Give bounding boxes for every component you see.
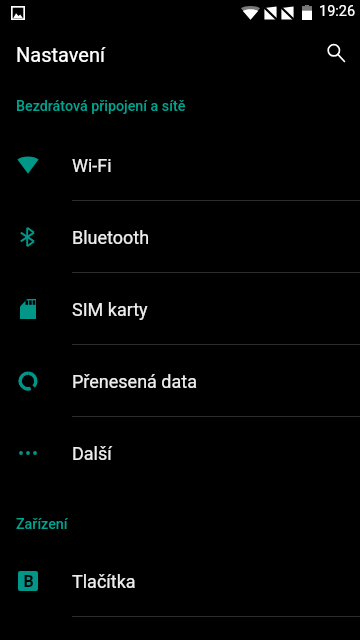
staticText: Zařízení — [16, 516, 68, 533]
staticText: Přenesená data — [72, 371, 197, 392]
button[interactable]: SIM karty — [0, 273, 360, 345]
staticText: Nastavení — [16, 43, 105, 66]
staticText: 19:26 — [319, 3, 356, 20]
staticText: B — [23, 572, 34, 591]
staticText: Další — [72, 443, 112, 464]
button[interactable]: B — [0, 545, 360, 617]
staticText: SIM karty — [72, 299, 148, 320]
button[interactable]: Další — [0, 417, 360, 488]
staticText: Bezdrátová připojení a sítě — [16, 98, 186, 115]
staticText: Wi-Fi — [72, 155, 112, 176]
button[interactable]: Bluetooth — [0, 201, 360, 273]
button[interactable]: Search — [312, 29, 360, 77]
button[interactable]: Wi-Fi — [0, 129, 360, 201]
staticText: Bluetooth — [72, 227, 150, 248]
staticText: Tlačítka — [72, 571, 136, 592]
button[interactable]: Přenesená data — [0, 345, 360, 417]
